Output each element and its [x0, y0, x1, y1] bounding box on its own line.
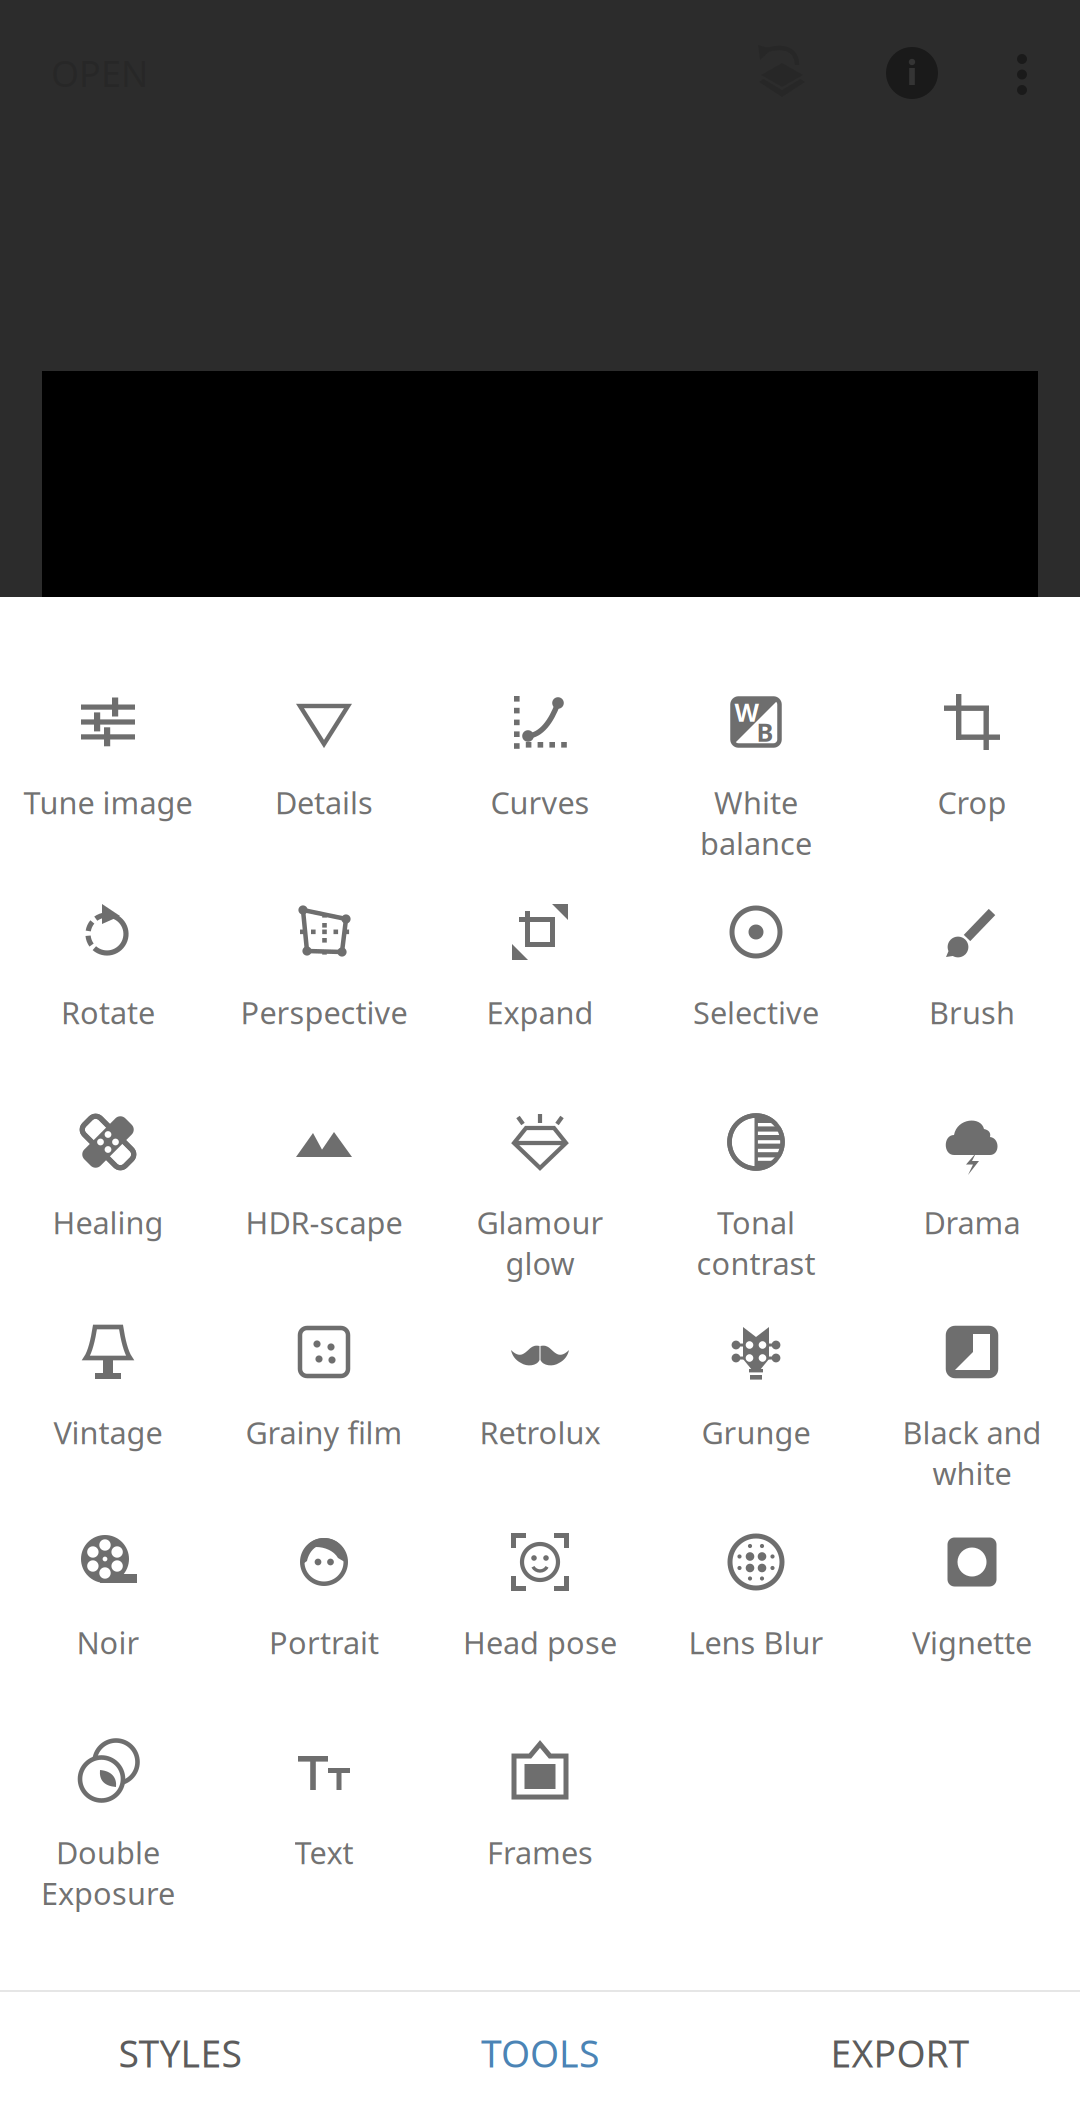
staticText: white — [932, 1453, 1011, 1493]
button[interactable]: STYLES — [0, 1991, 360, 2115]
button[interactable]: Curves — [432, 692, 648, 870]
staticText: B — [756, 715, 773, 749]
button[interactable]: Tonal — [648, 1112, 864, 1290]
button[interactable]: Crop — [864, 692, 1080, 870]
staticText: balance — [700, 823, 812, 863]
button[interactable]: Details — [216, 692, 432, 870]
button[interactable]: HDR-scape — [216, 1112, 432, 1290]
button[interactable]: More options — [992, 44, 1052, 104]
button[interactable]: Lens Blur — [648, 1532, 864, 1710]
staticText: Crop — [937, 782, 1006, 823]
button[interactable]: Noir — [0, 1532, 216, 1710]
staticText: Tonal — [717, 1202, 795, 1243]
staticText: Tune image — [23, 782, 192, 823]
staticText: Retrolux — [479, 1412, 600, 1453]
button[interactable]: Perspective — [216, 902, 432, 1080]
staticText: Details — [275, 782, 373, 823]
button[interactable]: Retrolux — [432, 1322, 648, 1500]
staticText: Lens Blur — [688, 1622, 823, 1663]
staticText: Head pose — [463, 1622, 617, 1663]
staticText: Expand — [486, 992, 593, 1033]
staticText: Black and — [902, 1412, 1041, 1453]
staticText: Grainy film — [245, 1412, 402, 1453]
button[interactable]: Selective — [648, 902, 864, 1080]
button[interactable]: Expand — [432, 902, 648, 1080]
button[interactable]: Grainy film — [216, 1322, 432, 1500]
button[interactable]: Tune image — [0, 692, 216, 870]
staticText: Selective — [693, 992, 819, 1033]
staticText: contrast — [696, 1243, 815, 1283]
staticText: Rotate — [61, 992, 155, 1033]
button[interactable]: Frames — [432, 1742, 648, 1920]
staticText: EXPORT — [830, 2028, 969, 2078]
button[interactable]: Portrait — [216, 1532, 432, 1710]
button[interactable]: Glamour — [432, 1112, 648, 1290]
staticText: Brush — [929, 992, 1015, 1033]
staticText: Noir — [76, 1622, 139, 1663]
staticText: STYLES — [118, 2028, 241, 2078]
staticText: Exposure — [41, 1873, 175, 1913]
button[interactable]: Brush — [864, 902, 1080, 1080]
staticText: Double — [56, 1832, 160, 1873]
button[interactable]: Head pose — [432, 1532, 648, 1710]
button[interactable]: Grunge — [648, 1322, 864, 1500]
staticText: Text — [294, 1832, 353, 1873]
button[interactable]: Info — [882, 43, 942, 103]
button[interactable]: TOOLS — [360, 1991, 720, 2115]
button[interactable]: Double — [0, 1742, 216, 1920]
button[interactable]: W — [648, 692, 864, 870]
staticText: glow — [505, 1243, 574, 1283]
button[interactable]: Drama — [864, 1112, 1080, 1290]
staticText: Glamour — [476, 1202, 603, 1243]
staticText: White — [714, 782, 798, 823]
button[interactable]: Rotate — [0, 902, 216, 1080]
staticText: Vignette — [912, 1622, 1032, 1663]
staticText: Frames — [487, 1832, 593, 1873]
staticText: W — [734, 695, 758, 729]
staticText: Drama — [923, 1202, 1020, 1243]
button[interactable]: Vintage — [0, 1322, 216, 1500]
button[interactable]: Text — [216, 1742, 432, 1920]
button[interactable]: Black and — [864, 1322, 1080, 1500]
staticText: HDR-scape — [245, 1202, 402, 1243]
staticText: Portrait — [269, 1622, 379, 1663]
button[interactable]: EXPORT — [720, 1991, 1080, 2115]
staticText: Grunge — [701, 1412, 810, 1453]
staticText: Vintage — [53, 1412, 162, 1453]
staticText: TOOLS — [481, 2028, 599, 2078]
button[interactable]: Healing — [0, 1112, 216, 1290]
button[interactable]: Vignette — [864, 1532, 1080, 1710]
staticText: Perspective — [240, 992, 407, 1033]
staticText: Curves — [490, 782, 589, 823]
staticText: Healing — [52, 1202, 163, 1243]
